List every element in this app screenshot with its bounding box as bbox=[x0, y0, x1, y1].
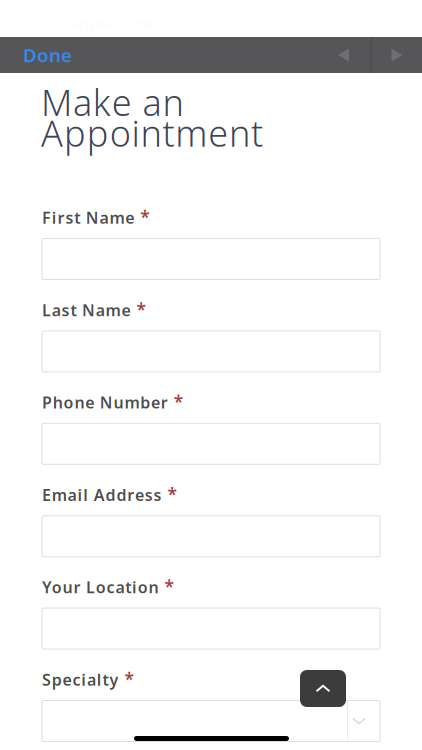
staticText: First Name bbox=[42, 207, 134, 249]
staticText: Specialty bbox=[42, 669, 118, 711]
staticText: Last Name bbox=[42, 299, 130, 342]
staticText: * bbox=[124, 667, 133, 690]
staticText: Done bbox=[23, 43, 72, 67]
staticText: Your Location bbox=[42, 576, 159, 619]
staticText: * bbox=[140, 205, 149, 228]
staticText: * bbox=[136, 298, 145, 321]
button[interactable]: Next field bbox=[373, 37, 421, 73]
button[interactable]: Done bbox=[0, 37, 86, 73]
staticText: Make an bbox=[41, 78, 188, 126]
button[interactable]: Previous field bbox=[318, 37, 369, 73]
staticText: Email Address bbox=[42, 484, 162, 527]
staticText: * bbox=[168, 483, 177, 506]
staticText: Appointment bbox=[41, 109, 268, 157]
staticText: * bbox=[174, 390, 183, 413]
button[interactable]: Scroll to top bbox=[300, 670, 346, 707]
staticText: Phone Number bbox=[42, 392, 168, 434]
staticText: * bbox=[165, 575, 174, 598]
